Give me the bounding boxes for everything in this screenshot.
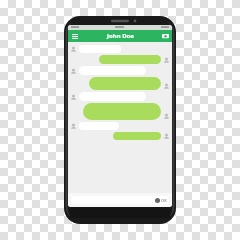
button[interactable]: [70, 55, 170, 64]
button[interactable]: Menu: [71, 32, 79, 40]
button[interactable]: [70, 122, 170, 130]
staticText: John Doe: [107, 32, 134, 40]
staticText: OK: [161, 198, 167, 203]
button[interactable]: Camera: [161, 32, 169, 40]
button[interactable]: [70, 45, 170, 53]
button[interactable]: [70, 66, 170, 75]
button[interactable]: [70, 77, 170, 90]
button[interactable]: OK: [71, 196, 169, 204]
button[interactable]: [70, 103, 170, 120]
button[interactable]: [70, 132, 170, 140]
button[interactable]: [70, 92, 170, 101]
